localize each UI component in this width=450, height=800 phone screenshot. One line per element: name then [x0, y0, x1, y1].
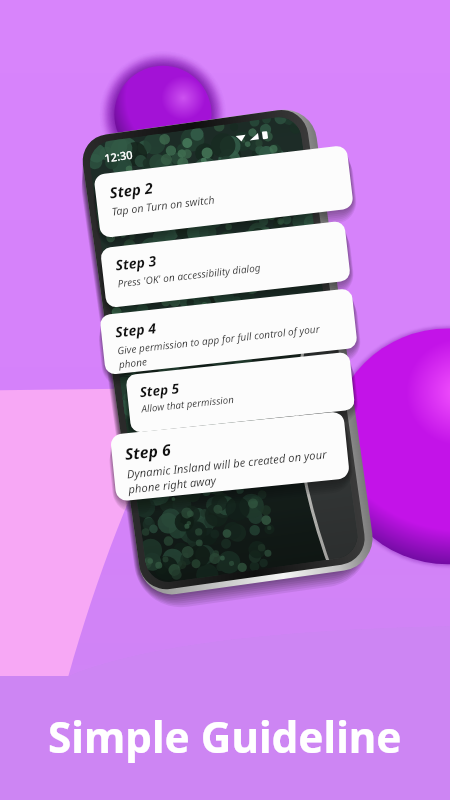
button[interactable]: Simple Guideline onboarding screen	[0, 0, 450, 800]
